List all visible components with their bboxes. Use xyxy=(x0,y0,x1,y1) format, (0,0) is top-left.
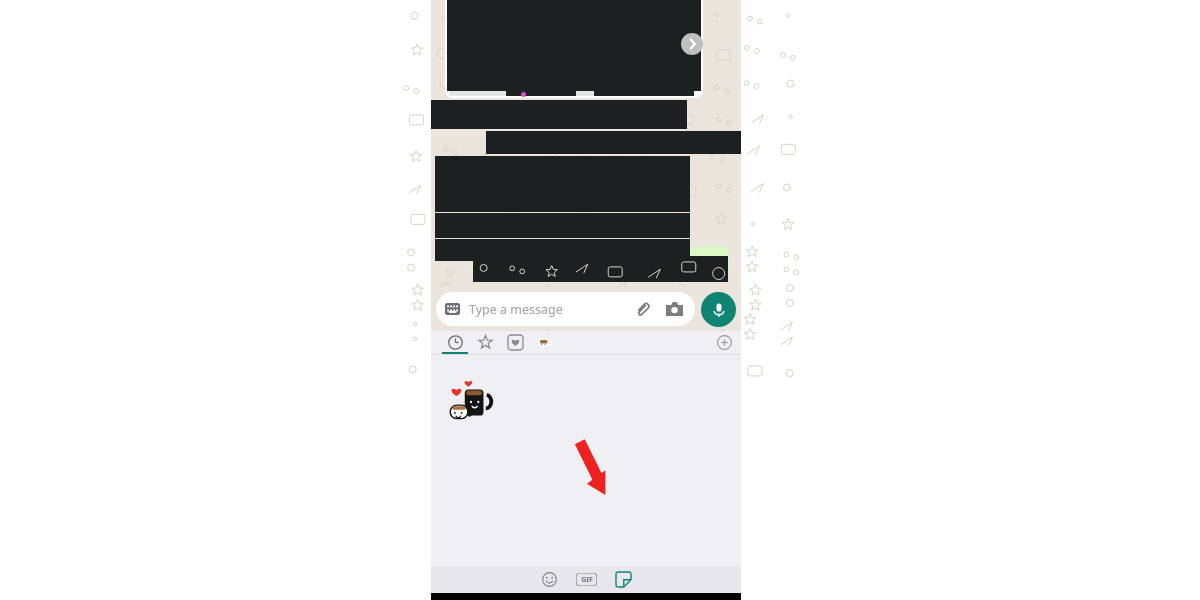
button[interactable]: Coffee mugs sticker xyxy=(445,376,497,428)
button[interactable]: Starred stickers xyxy=(470,331,500,354)
button[interactable]: Attach xyxy=(630,297,654,321)
button[interactable]: Coffee sticker pack xyxy=(530,331,560,354)
button[interactable]: Type a message xyxy=(436,292,695,326)
button[interactable]: Stickers xyxy=(608,566,638,593)
button[interactable]: Voice message xyxy=(701,292,736,327)
button[interactable]: Emoji xyxy=(534,566,564,593)
button[interactable]: GIF xyxy=(569,566,603,593)
button[interactable]: Recent stickers xyxy=(440,331,470,354)
button[interactable]: Camera xyxy=(662,297,686,321)
button[interactable]: Favourite pack xyxy=(500,331,530,354)
staticText: Type a message xyxy=(469,301,563,318)
button[interactable]: Add sticker pack xyxy=(707,331,741,354)
staticText: GIF xyxy=(581,575,593,585)
